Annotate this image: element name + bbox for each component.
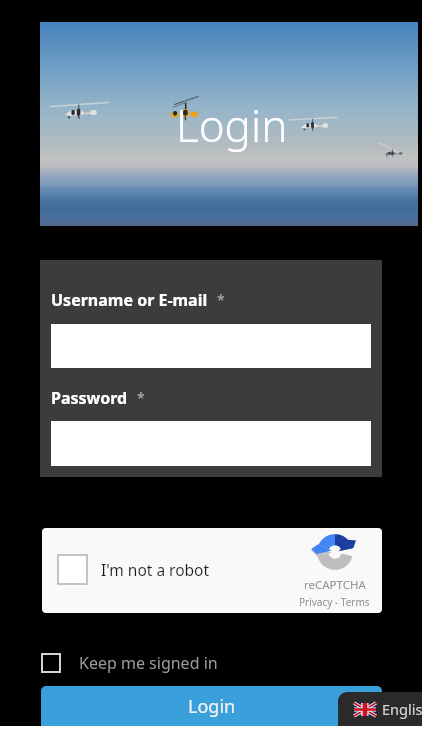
button[interactable]: Login	[41, 686, 382, 726]
staticText: Login	[176, 95, 288, 155]
staticText: Password	[51, 387, 128, 409]
staticText: reCAPTCHA	[304, 577, 366, 593]
staticText: Username or E-mail	[51, 289, 208, 311]
staticText: I'm not a robot	[101, 559, 210, 580]
button[interactable]: I'm not a robot	[42, 528, 382, 613]
staticText: Privacy - Terms	[299, 595, 370, 609]
button[interactable]: Select language	[338, 692, 422, 726]
staticText: Keep me signed in	[79, 652, 218, 674]
staticText: *	[137, 388, 145, 407]
staticText: Login	[188, 694, 236, 719]
button[interactable]: Keep me signed in	[41, 650, 218, 676]
staticText: *	[217, 290, 225, 309]
staticText: Englis.	[382, 699, 422, 719]
